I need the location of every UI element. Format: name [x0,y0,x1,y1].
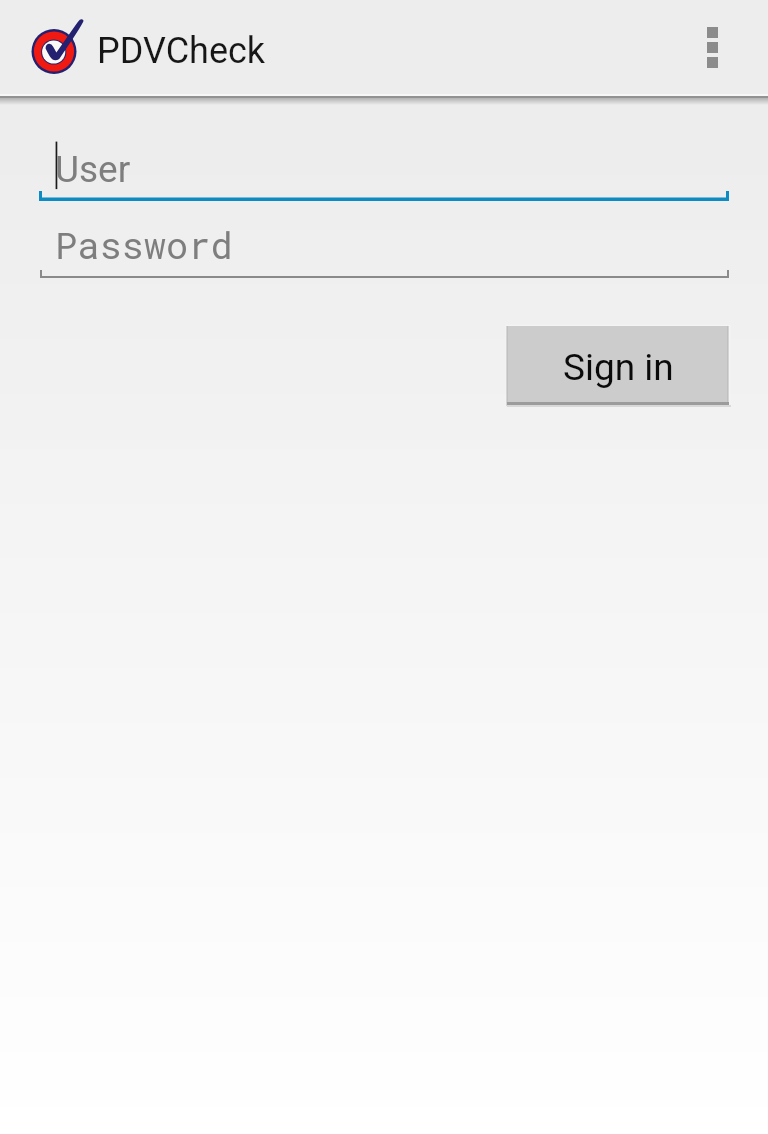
button[interactable]: More options [676,0,768,94]
button[interactable]: Sign in [504,323,732,409]
staticText: PDVCheck [97,30,266,72]
staticText: Sign in [563,346,674,389]
staticText: User [55,148,131,191]
button[interactable]: Password [40,213,729,278]
staticText: Password [55,220,233,269]
button[interactable]: User [39,134,729,201]
